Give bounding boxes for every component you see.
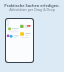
staticText: Aktivitäten per Drag & Drop: [0, 7, 64, 12]
staticText: Praktische Sachen erledigen.: [0, 3, 64, 8]
